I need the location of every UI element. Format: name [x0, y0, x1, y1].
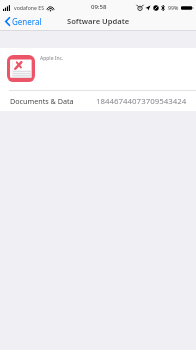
button[interactable]: Documents & Data	[0, 91, 196, 111]
staticText: 18446744073709543424	[96, 96, 187, 107]
staticText: 09:58	[91, 3, 107, 11]
button[interactable]: Apple Inc.	[0, 48, 196, 90]
button[interactable]: General	[5, 17, 42, 28]
staticText: Apple Inc.	[40, 55, 64, 62]
staticText: General	[12, 16, 42, 27]
staticText: Software Update	[67, 16, 130, 26]
staticText: 99%	[168, 4, 179, 11]
staticText: Documents & Data	[10, 96, 74, 106]
staticText: vodafone ES	[14, 4, 45, 11]
